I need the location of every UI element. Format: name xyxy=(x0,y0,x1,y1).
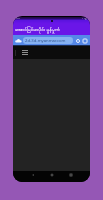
staticText: အောင်မြင်မာပိုင်း မှုန်မှုကံ xyxy=(15,26,60,34)
staticText: 2d-3d-myanmar.com xyxy=(25,38,66,44)
button[interactable]: Reload xyxy=(74,37,81,44)
staticText: • • ▮ xyxy=(82,17,87,20)
button[interactable]: Back xyxy=(30,172,35,177)
button[interactable]: Home xyxy=(49,172,54,177)
other: Cloud xyxy=(15,37,22,44)
button[interactable]: Tabs xyxy=(81,37,88,44)
staticText: •••• xyxy=(16,17,20,20)
button[interactable]: 2d-3d-myanmar.com xyxy=(23,37,73,44)
button[interactable]: အောင်မြင်မာပိုင်း မှုန်မှုကံ xyxy=(13,20,90,35)
button[interactable]: Recent apps xyxy=(68,172,73,177)
